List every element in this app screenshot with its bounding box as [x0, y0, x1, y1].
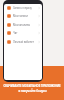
staticText: и получайте бонусы: [18, 89, 47, 93]
other: Личный кабинет: [7, 40, 11, 44]
staticText: Мои анализы: [13, 23, 31, 27]
button[interactable]: Чат: [4, 29, 42, 37]
staticText: СКАЧИВАЙТЕ МОБИЛЬНОЕ ПРИЛОЖЕНИЕ: [3, 84, 61, 88]
button[interactable]: Мои анализы: [4, 21, 42, 29]
button[interactable]: Запись к врачу: [4, 4, 42, 12]
button[interactable]: Личный кабинет: [4, 38, 42, 46]
other: Чат: [7, 31, 11, 35]
staticText: Запись к врачу: [13, 6, 32, 10]
other: Запись к врачу: [7, 6, 11, 10]
staticText: Личный кабинет: [13, 40, 34, 44]
button[interactable]: Мои записи: [4, 12, 42, 20]
other: Мои записи: [7, 14, 11, 18]
staticText: Чат: [13, 31, 18, 35]
staticText: Мои записи: [13, 14, 28, 18]
other: Мои анализы: [7, 23, 11, 27]
